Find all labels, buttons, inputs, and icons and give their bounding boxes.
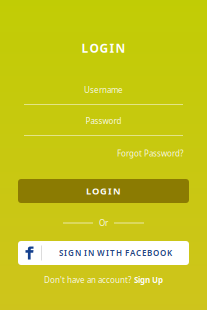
button[interactable]: S I G N I N W I T H F A C E B O O K — [18, 241, 189, 265]
staticText: Password — [85, 116, 121, 126]
staticText: Don't have an account? — [44, 275, 131, 285]
staticText: Forgot Password? — [117, 148, 183, 159]
staticText: L O G I N — [86, 185, 121, 197]
staticText: S I G N I N W I T H F A C E B O O K — [59, 248, 172, 258]
button[interactable]: Don't have an account? — [44, 276, 163, 284]
staticText: Or — [99, 218, 108, 228]
staticText: Username — [84, 85, 123, 95]
staticText: Sign Up — [134, 275, 163, 285]
button[interactable]: L O G I N — [18, 179, 189, 203]
staticText: L O G I N — [81, 40, 125, 56]
button[interactable]: Forgot Password? — [117, 149, 183, 158]
